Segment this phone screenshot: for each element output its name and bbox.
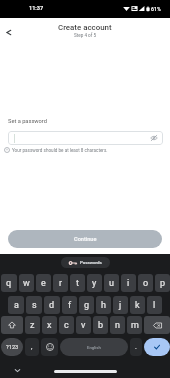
staticText: q <box>6 278 12 289</box>
staticText: Step 4 of 5 <box>74 33 97 38</box>
staticText: j <box>119 300 122 311</box>
staticText: . <box>135 343 137 351</box>
button[interactable]: a <box>8 296 24 314</box>
staticText: 61% <box>151 6 161 12</box>
button[interactable]: n <box>110 316 125 334</box>
button[interactable]: u <box>104 274 119 292</box>
button[interactable]: Emoji <box>41 338 58 356</box>
staticText: l <box>153 300 156 311</box>
button[interactable]: k <box>130 296 145 314</box>
staticText: r <box>59 278 63 289</box>
button[interactable]: j <box>113 296 128 314</box>
button[interactable]: o <box>138 274 153 292</box>
button[interactable]: l <box>147 296 162 314</box>
staticText: Continue <box>74 236 97 243</box>
button[interactable]: c <box>59 316 74 334</box>
button[interactable]: y <box>87 274 102 292</box>
button[interactable]: g <box>79 296 94 314</box>
button[interactable]: t <box>70 274 85 292</box>
staticText: w <box>23 278 30 289</box>
button[interactable]: Backspace <box>144 316 170 334</box>
button[interactable]: r <box>53 274 68 292</box>
button[interactable]: Shift <box>1 316 23 334</box>
button[interactable]: q <box>1 274 17 292</box>
staticText: Passwords <box>80 260 102 265</box>
button[interactable]: Show password <box>8 131 163 145</box>
staticText: a <box>14 300 19 311</box>
button[interactable]: Hide keyboard <box>11 364 23 376</box>
staticText: o <box>143 278 149 289</box>
staticText: g <box>84 300 90 311</box>
staticText: c <box>64 320 69 331</box>
button[interactable]: b <box>93 316 108 334</box>
staticText: Set a password <box>8 118 47 125</box>
button[interactable]: Back <box>0 23 17 41</box>
staticText: i <box>127 278 130 289</box>
button[interactable]: Continue <box>8 230 162 248</box>
button[interactable]: z <box>25 316 40 334</box>
staticText: , <box>31 343 33 351</box>
staticText: Create account <box>58 23 112 32</box>
button[interactable]: English <box>60 338 128 356</box>
staticText: h <box>101 300 106 311</box>
button[interactable]: i <box>121 274 136 292</box>
staticText: s <box>32 300 37 311</box>
button[interactable]: ?123 <box>1 338 23 356</box>
button[interactable]: m <box>127 316 142 334</box>
button[interactable]: . <box>130 338 142 356</box>
staticText: t <box>76 278 79 289</box>
staticText: k <box>135 300 140 311</box>
button[interactable]: Enter <box>144 338 170 356</box>
staticText: Your password should be at least 8 chara… <box>12 148 108 153</box>
button[interactable]: s <box>26 296 42 314</box>
staticText: e <box>41 278 46 289</box>
button[interactable]: v <box>76 316 91 334</box>
staticText: English <box>87 345 101 350</box>
button[interactable]: w <box>19 274 34 292</box>
staticText: 11:37 <box>29 5 44 12</box>
staticText: b <box>98 320 104 331</box>
staticText: n <box>115 320 120 331</box>
button[interactable]: Show password <box>149 133 159 143</box>
staticText: z <box>30 320 35 331</box>
button[interactable]: , <box>25 338 39 356</box>
button[interactable]: h <box>96 296 111 314</box>
button[interactable]: p <box>155 274 170 292</box>
staticText: d <box>49 300 55 311</box>
staticText: v <box>81 320 86 331</box>
staticText: f <box>68 300 72 311</box>
staticText: x <box>47 320 52 331</box>
staticText: y <box>92 278 97 289</box>
button[interactable]: x <box>42 316 57 334</box>
button[interactable]: f <box>62 296 77 314</box>
button[interactable]: Passwords <box>61 257 110 268</box>
staticText: ?123 <box>6 344 19 351</box>
staticText: m <box>131 320 139 331</box>
button[interactable]: e <box>36 274 51 292</box>
button[interactable]: d <box>44 296 60 314</box>
staticText: p <box>160 278 166 289</box>
staticText: u <box>109 278 114 289</box>
